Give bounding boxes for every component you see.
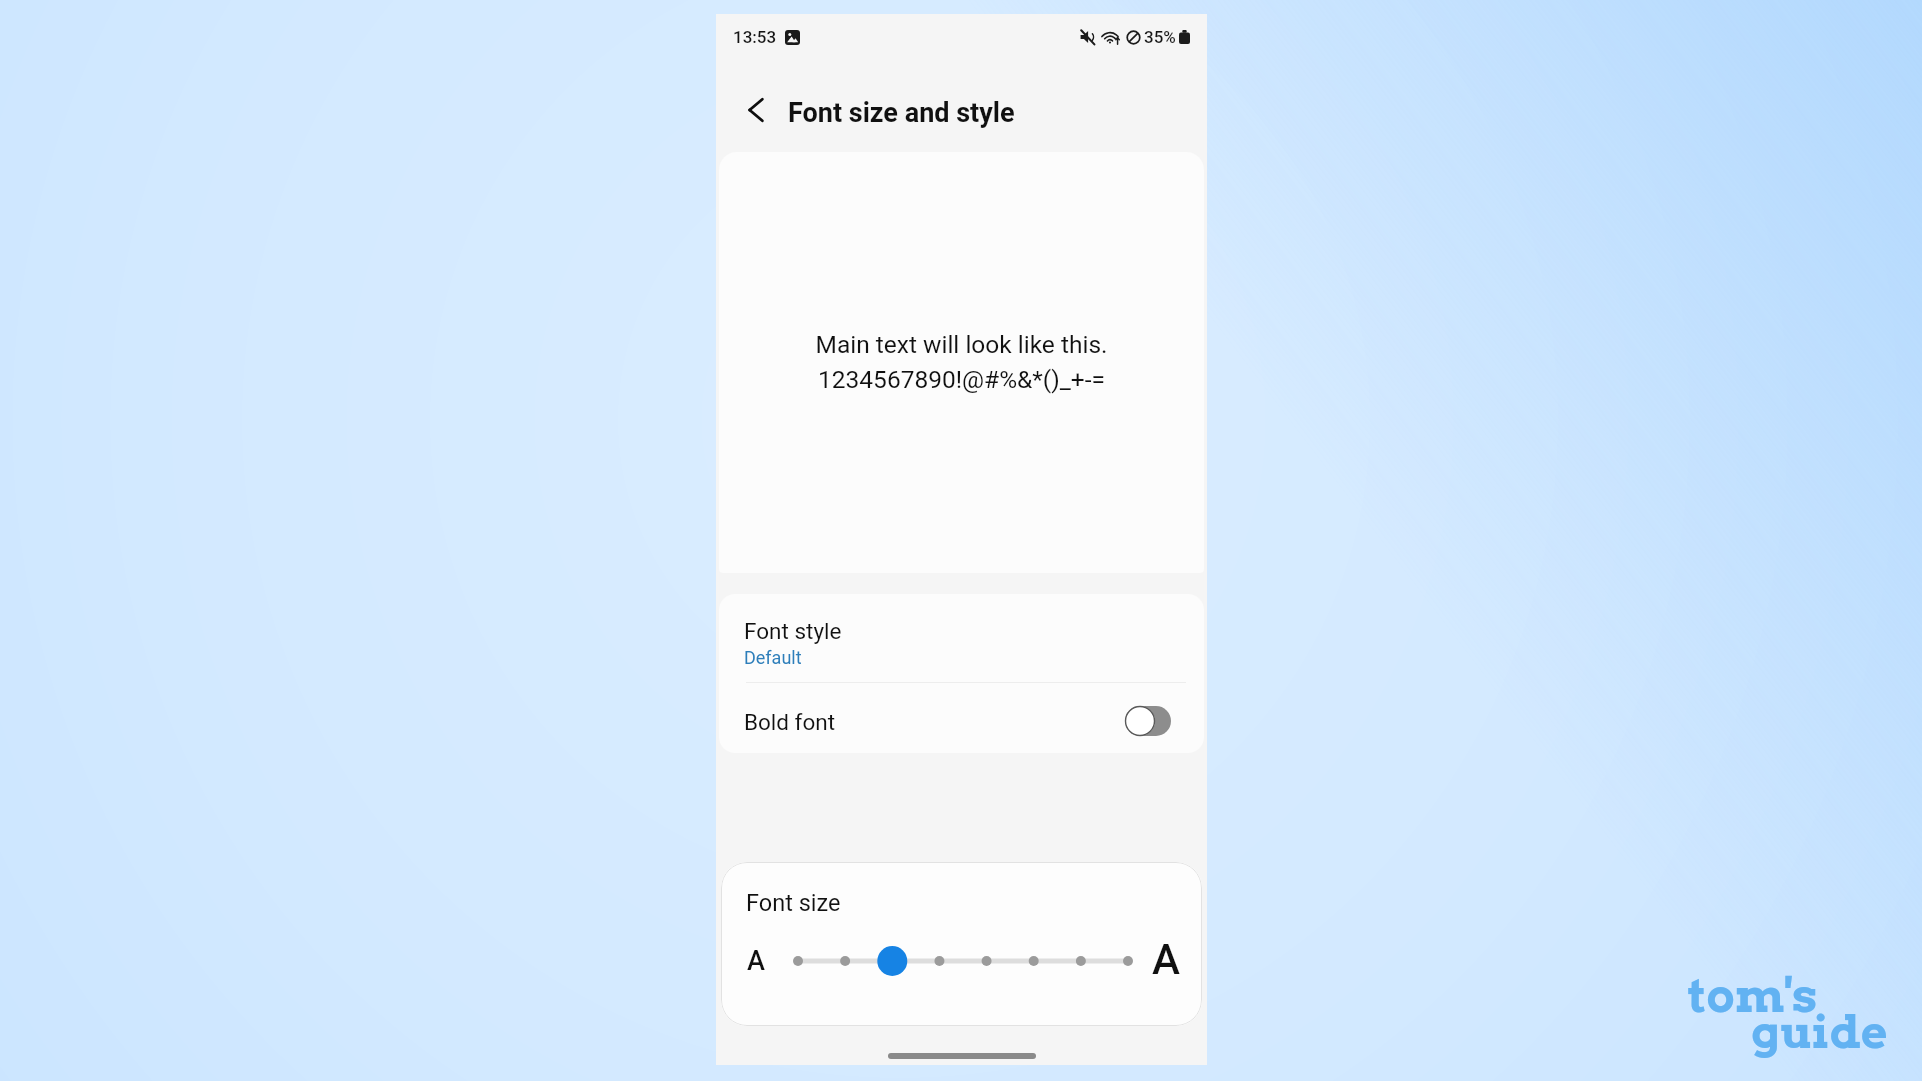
staticText: Font size [746,889,841,917]
staticText: Main text will look like this. [815,330,1108,359]
staticText: tom's [1688,967,1818,1024]
staticText: A [747,945,765,977]
button[interactable]: Bold font off [1124,706,1174,738]
staticText: Font style [744,618,842,644]
button[interactable]: Bold font [719,687,1204,753]
staticText: A [1152,935,1180,984]
button[interactable]: Back [738,92,774,128]
button[interactable]: Font size slider [788,945,1138,977]
staticText: Bold font [744,709,836,735]
staticText: Default [744,647,802,668]
staticText: guide [1751,1004,1888,1060]
staticText: 1234567890!@#%&*()_+-= [818,365,1105,394]
staticText: 35% [1144,27,1176,47]
button[interactable]: Font style [719,594,1204,682]
staticText: Font size and style [788,97,1015,129]
staticText: 13:53 [733,27,777,47]
